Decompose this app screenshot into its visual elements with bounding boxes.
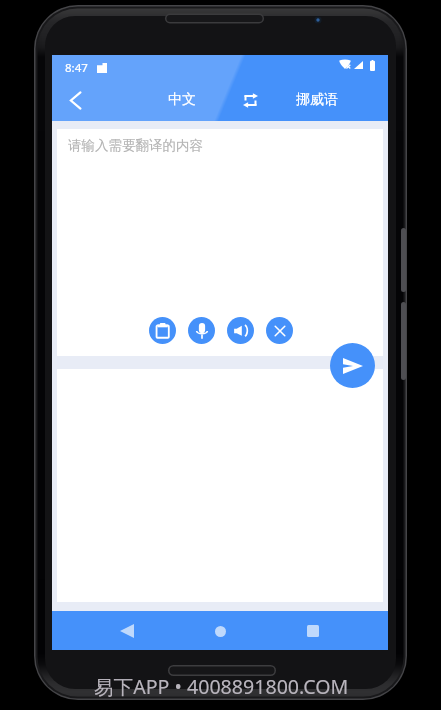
button[interactable]: Paste [149,317,176,344]
button[interactable]: Clear [266,317,293,344]
button[interactable]: Speak [227,317,254,344]
button[interactable]: Back [109,613,145,649]
staticText: 中文 [168,91,196,109]
staticText: 8:47 [65,60,88,76]
button[interactable]: Home [202,613,238,649]
button[interactable]: Back [52,79,98,121]
staticText: 挪威语 [296,91,338,109]
button[interactable]: Translate [330,343,375,388]
staticText: 易下APP • 4008891800.COM [94,673,349,700]
staticText: 请输入需要翻译的内容 [68,137,203,154]
button[interactable]: Swap languages [232,82,268,118]
button[interactable]: Voice input [188,317,215,344]
button[interactable]: 中文 [132,79,232,121]
button[interactable]: 挪威语 [267,79,367,121]
button[interactable]: Recents [295,613,331,649]
